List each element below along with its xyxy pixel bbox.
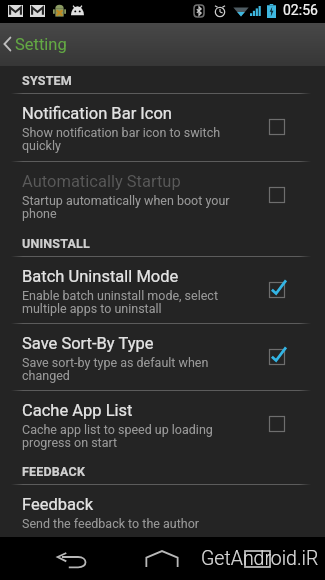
staticText: Batch Uninstall Mode: [22, 267, 179, 286]
button[interactable]: Setting: [0, 23, 90, 66]
button[interactable]: Automatically Startup: [0, 161, 325, 229]
staticText: Notification Bar Icon: [22, 104, 172, 123]
staticText: Send the feedback to the author: [22, 516, 200, 531]
staticText: FEEDBACK: [22, 464, 86, 479]
staticText: Automatically Startup: [22, 172, 181, 191]
button[interactable]: Cache App List: [0, 390, 325, 458]
button[interactable]: Batch Uninstall Mode: [0, 256, 325, 323]
staticText: Startup automatically when boot your pho…: [22, 193, 237, 221]
button[interactable]: Home: [140, 537, 184, 580]
staticText: Cache app list to speed up loading progr…: [22, 422, 237, 450]
staticText: Setting: [15, 35, 67, 54]
staticText: Cache App List: [22, 401, 133, 420]
button[interactable]: Notification Bar Icon: [0, 93, 325, 161]
button[interactable]: Back: [50, 539, 94, 580]
staticText: Show notification bar icon to switch qui…: [22, 125, 237, 153]
staticText: SYSTEM: [22, 73, 72, 88]
staticText: 02:56: [283, 2, 318, 18]
staticText: GetAndroid.iR: [201, 547, 319, 570]
staticText: Feedback: [22, 495, 93, 514]
staticText: Save sort-by type as default when change…: [22, 355, 237, 383]
staticText: Enable batch uninstall mode, select mult…: [22, 288, 237, 316]
staticText: Save Sort-By Type: [22, 334, 154, 353]
staticText: UNINSTALL: [22, 236, 91, 251]
button[interactable]: Feedback: [0, 484, 325, 537]
button[interactable]: Save Sort-By Type: [0, 323, 325, 390]
button[interactable]: Recent apps: [235, 537, 279, 580]
